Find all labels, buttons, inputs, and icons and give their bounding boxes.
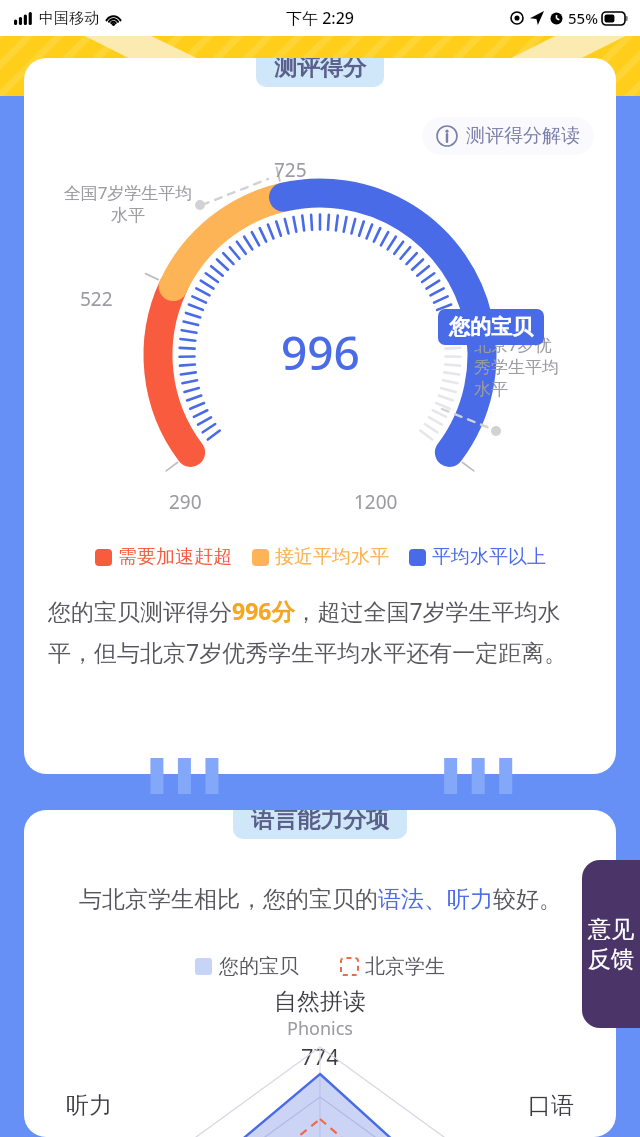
- staticText: 522: [80, 286, 113, 312]
- staticText: 您的宝贝测评得分996分，超过全国7岁学生平均水平，但与北京7岁优秀学生平均水平…: [48, 595, 592, 668]
- staticText: 全国7岁学生平均 水平: [48, 181, 208, 226]
- staticText: 774: [301, 1041, 339, 1071]
- staticText: 290: [169, 489, 202, 515]
- staticText: 接近平均水平: [275, 545, 389, 569]
- staticText: 需要加速赶超: [118, 545, 232, 569]
- button[interactable]: 意见反馈: [582, 860, 640, 1028]
- staticText: 自然拼读: [274, 987, 366, 1016]
- staticText: 平均水平以上: [432, 545, 546, 569]
- staticText: 语言能力分项: [251, 810, 389, 834]
- staticText: 测评得分: [274, 58, 366, 82]
- staticText: 与北京学生相比，您的宝贝的语法、听力较好。: [79, 885, 562, 914]
- staticText: 北京7岁优 秀学生平均 水平: [474, 333, 594, 400]
- staticText: 听力: [66, 1091, 112, 1120]
- staticText: 测评得分解读: [466, 124, 580, 148]
- staticText: 725: [274, 157, 307, 183]
- staticText: 您的宝贝: [219, 954, 299, 979]
- staticText: 996: [281, 321, 360, 384]
- button[interactable]: 您的宝贝: [438, 309, 544, 345]
- staticText: 北京学生: [365, 954, 445, 979]
- button[interactable]: 测评得分解读: [422, 117, 594, 155]
- staticText: 下午 2:29: [286, 7, 354, 29]
- staticText: 您的宝贝: [449, 314, 533, 340]
- staticText: 中国移动: [39, 9, 99, 28]
- staticText: 口语: [528, 1091, 574, 1120]
- staticText: 55%: [568, 8, 598, 28]
- staticText: 1200: [354, 489, 398, 515]
- staticText: 意见 反馈: [588, 915, 634, 974]
- staticText: Phonics: [287, 1016, 353, 1041]
